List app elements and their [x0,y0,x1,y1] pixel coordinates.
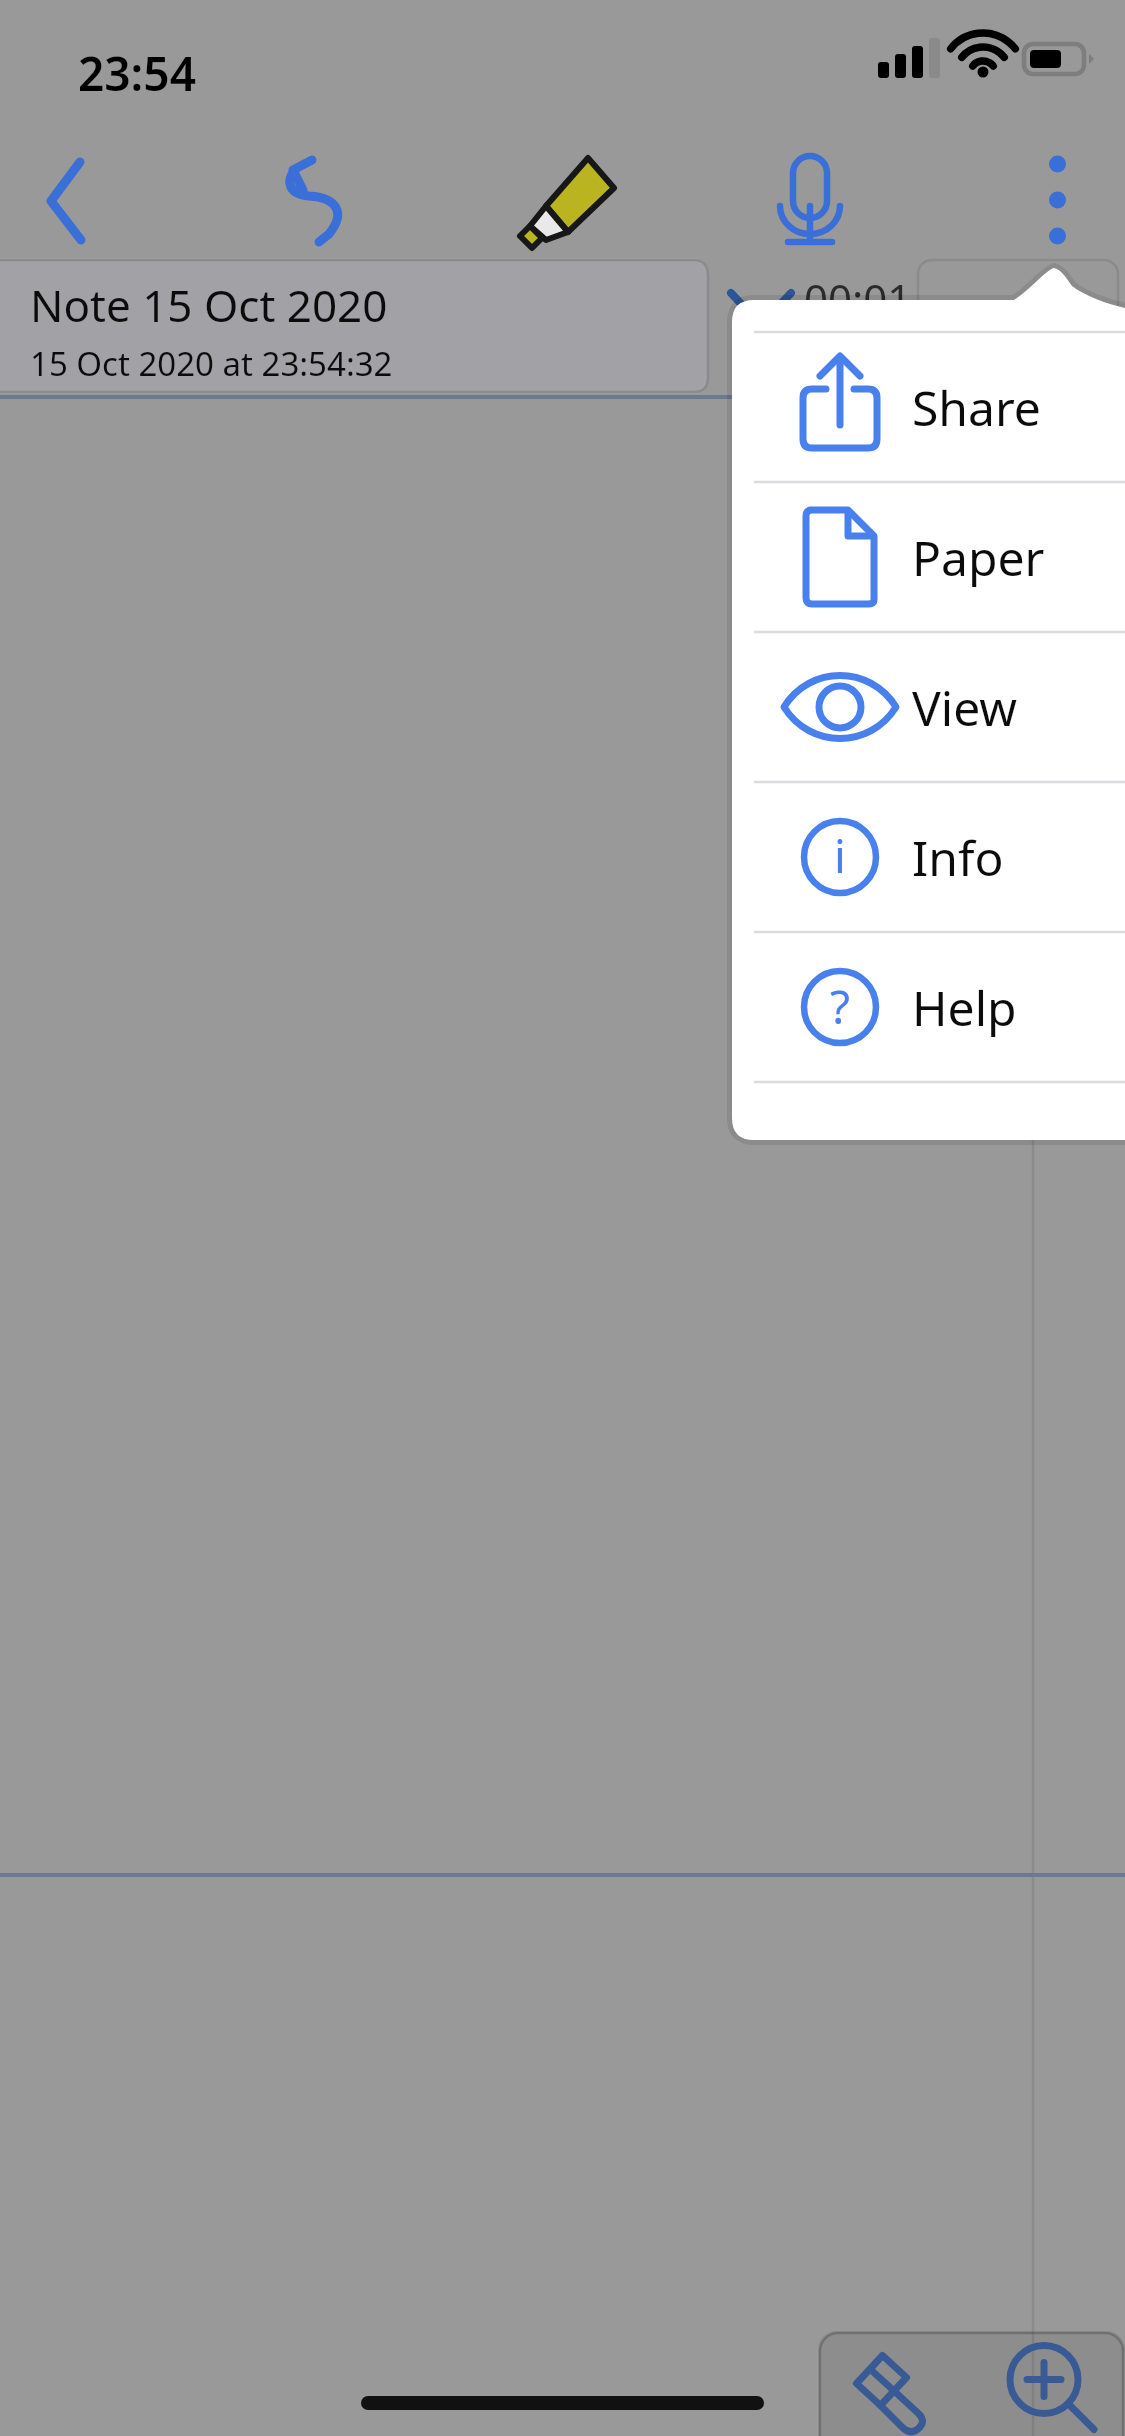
button[interactable]: Paper [732,482,1125,632]
staticText: 23:54 [78,42,196,105]
staticText: i [834,824,846,887]
staticText: Note 15 Oct 2020 [30,275,388,335]
button[interactable]: Eraser [818,2331,971,2436]
button[interactable]: i [732,782,1125,932]
staticText: Share [912,375,1041,440]
button[interactable]: Record audio [745,140,875,260]
staticText: 15 Oct 2020 at 23:54:32 [30,341,393,386]
staticText: 00:01 [804,270,912,327]
button[interactable]: View [732,632,1125,782]
staticText: Paper [912,525,1045,590]
button[interactable]: More options [990,140,1125,260]
staticText: Info [912,825,1004,890]
button[interactable]: Zoom in [971,2331,1125,2436]
staticText: Help [912,975,1017,1040]
staticText: View [912,675,1018,740]
staticText: ? [830,975,850,1038]
button[interactable]: Highlighter [500,140,640,260]
button[interactable]: Share [732,332,1125,482]
button[interactable]: Note 15 Oct 2020 [0,258,708,394]
button[interactable]: ? [732,932,1125,1082]
button[interactable]: Back [0,140,130,260]
button[interactable]: Collapse [714,266,808,348]
button[interactable]: Undo [250,140,380,260]
